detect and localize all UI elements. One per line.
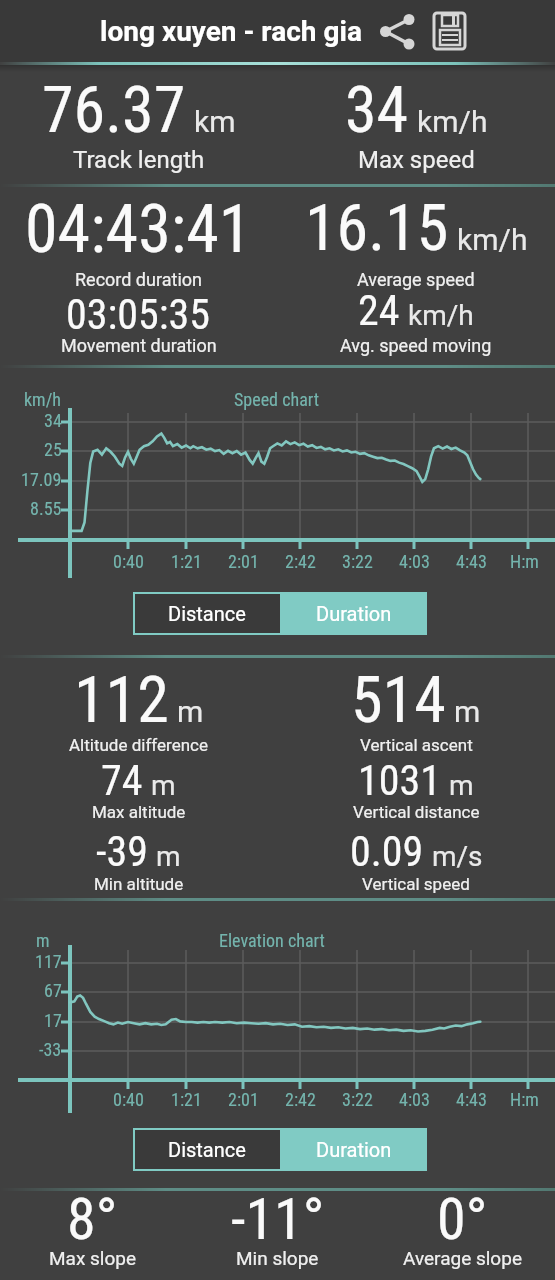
staticText: Max slope [49, 1247, 137, 1269]
staticText: 0:40 [113, 551, 144, 572]
staticText: Avg. speed moving [340, 335, 492, 356]
staticText: -39 [96, 827, 148, 865]
staticText: 04:43:41 [25, 191, 252, 247]
staticText: 4:03 [399, 551, 430, 572]
staticText: 514 [351, 663, 446, 729]
staticText: m [177, 694, 204, 729]
staticText: 03:05:35 [66, 290, 211, 328]
staticText: 4:03 [399, 1089, 430, 1110]
staticText: 112 [74, 663, 169, 729]
staticText: Track length [73, 146, 205, 172]
staticText: Vertical distance [353, 802, 480, 822]
staticText: m [156, 840, 181, 873]
staticText: km/h [24, 389, 62, 410]
staticText: 0:40 [113, 1089, 144, 1110]
staticText: 2:01 [228, 551, 259, 572]
staticText: Record duration [75, 269, 202, 290]
staticText: Vertical ascent [360, 735, 473, 755]
staticText: 17.09 [21, 469, 62, 490]
staticText: Max altitude [92, 802, 186, 822]
button[interactable]: Duration [280, 1128, 427, 1171]
button[interactable] [376, 9, 420, 53]
staticText: 4:43 [456, 551, 487, 572]
staticText: 117 [35, 951, 62, 972]
staticText: 8.55 [30, 498, 62, 519]
staticText: 76.37 [42, 73, 186, 137]
staticText: Duration [316, 1138, 392, 1161]
button[interactable]: Duration [280, 592, 427, 635]
button[interactable] [430, 10, 472, 52]
staticText: -33 [39, 1039, 62, 1060]
staticText: 3:22 [342, 551, 373, 572]
staticText: Distance [168, 602, 246, 625]
staticText: m [151, 769, 176, 802]
staticText: Average speed [357, 269, 475, 290]
staticText: long xuyen - rach gia [100, 15, 362, 48]
staticText: H:m [510, 1089, 539, 1110]
staticText: Min slope [236, 1247, 319, 1269]
staticText: 34 [44, 410, 62, 431]
staticText: Duration [316, 602, 392, 625]
staticText: 8° [67, 1185, 118, 1237]
button[interactable]: Distance [133, 1128, 280, 1171]
button[interactable]: Distance [133, 592, 280, 635]
staticText: km [194, 104, 236, 139]
staticText: 1:21 [171, 1089, 202, 1110]
staticText: 4:43 [456, 1089, 487, 1110]
staticText: 16.15 [305, 191, 449, 247]
staticText: km/h [417, 104, 488, 139]
staticText: 2:42 [285, 1089, 316, 1110]
staticText: 67 [44, 980, 62, 1001]
staticText: 74 [101, 756, 143, 794]
staticText: -11° [231, 1185, 325, 1237]
staticText: m [36, 930, 50, 951]
staticText: 34 [345, 73, 409, 137]
staticText: Max speed [358, 146, 475, 172]
staticText: Vertical speed [362, 874, 470, 894]
staticText: 1:21 [171, 551, 202, 572]
staticText: H:m [510, 551, 539, 572]
staticText: 2:01 [228, 1089, 259, 1110]
staticText: 25 [44, 439, 62, 460]
staticText: 0° [437, 1185, 488, 1237]
staticText: Altitude difference [69, 735, 208, 755]
staticText: m [454, 694, 481, 729]
staticText: Movement duration [61, 335, 217, 356]
staticText: 2:42 [285, 551, 316, 572]
staticText: km/h [408, 299, 474, 332]
staticText: m/s [432, 840, 483, 873]
staticText: m [449, 769, 474, 802]
staticText: 0.09 [350, 827, 424, 865]
staticText: Elevation chart [219, 930, 325, 951]
staticText: 24 [358, 286, 400, 324]
staticText: 3:22 [342, 1089, 373, 1110]
staticText: 17 [44, 1010, 62, 1031]
staticText: km/h [457, 222, 528, 257]
staticText: Min altitude [94, 874, 184, 894]
staticText: Speed chart [234, 389, 320, 410]
staticText: Distance [168, 1138, 246, 1161]
staticText: Average slope [403, 1247, 522, 1269]
staticText: 1031 [358, 756, 441, 794]
